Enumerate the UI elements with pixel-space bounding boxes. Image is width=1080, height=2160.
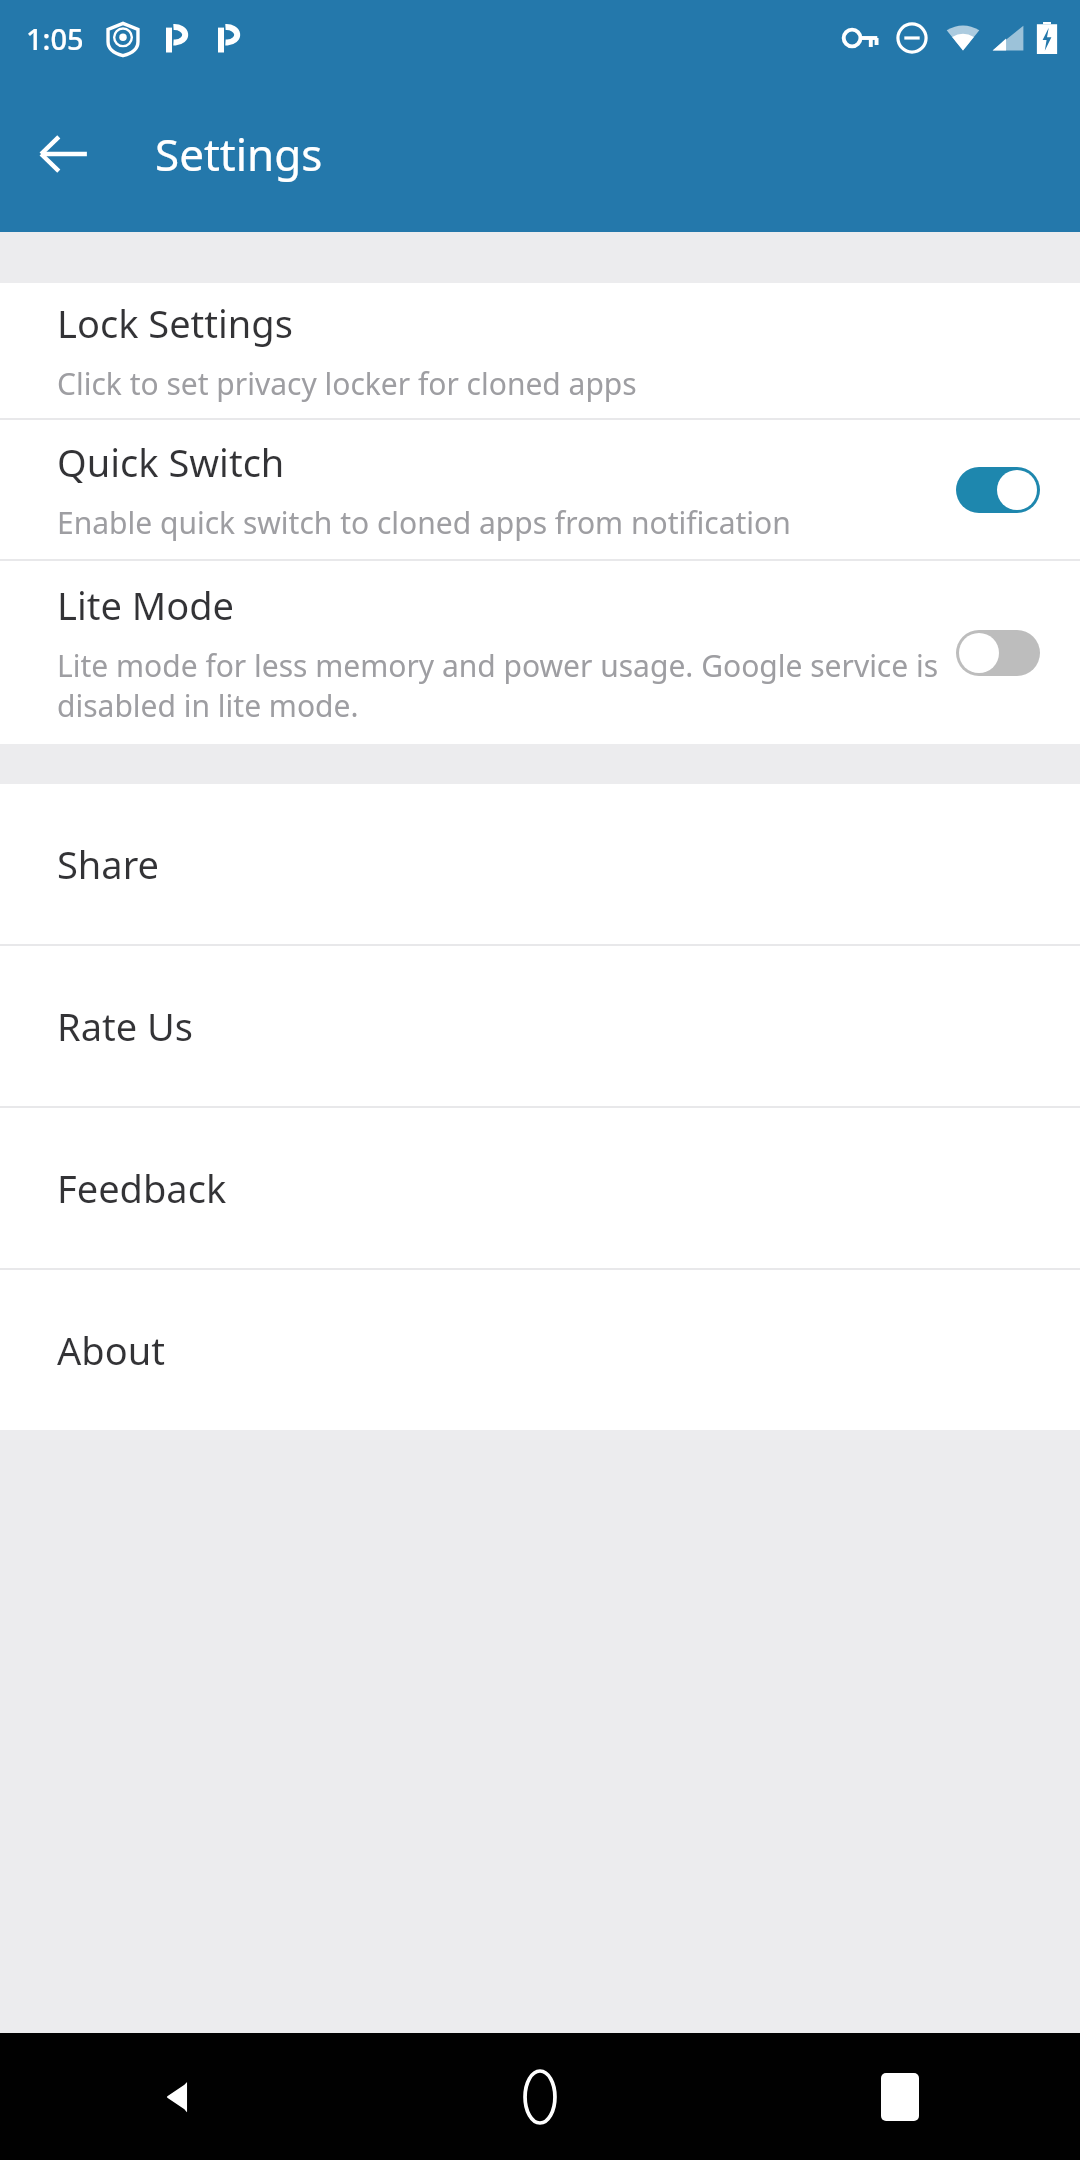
button[interactable]: Rate Us: [0, 946, 1080, 1106]
button[interactable]: Recent apps: [720, 2033, 1080, 2160]
button[interactable]: Quick Switch: [0, 420, 1080, 559]
staticText: Enable quick switch to cloned apps from …: [57, 502, 791, 543]
button[interactable]: Back: [24, 114, 104, 194]
staticText: Share: [57, 838, 160, 890]
button[interactable]: Toggle on: [956, 467, 1040, 513]
button[interactable]: Back: [0, 2033, 360, 2160]
staticText: About: [57, 1324, 165, 1376]
button[interactable]: Lock Settings: [0, 283, 1080, 418]
button[interactable]: Feedback: [0, 1108, 1080, 1268]
staticText: 1:05: [26, 19, 84, 58]
staticText: Click to set privacy locker for cloned a…: [57, 363, 637, 404]
staticText: Lock Settings: [57, 297, 293, 349]
staticText: Quick Switch: [57, 436, 285, 488]
staticText: Rate Us: [57, 1000, 193, 1052]
staticText: Lite mode for less memory and power usag…: [57, 645, 940, 726]
button[interactable]: Home: [360, 2033, 720, 2160]
button[interactable]: Share: [0, 784, 1080, 944]
staticText: Feedback: [57, 1162, 227, 1214]
button[interactable]: Toggle off: [956, 630, 1040, 676]
staticText: Lite Mode: [57, 579, 235, 631]
button[interactable]: About: [0, 1270, 1080, 1430]
staticText: Settings: [155, 124, 323, 184]
button[interactable]: Lite Mode: [0, 561, 1080, 744]
